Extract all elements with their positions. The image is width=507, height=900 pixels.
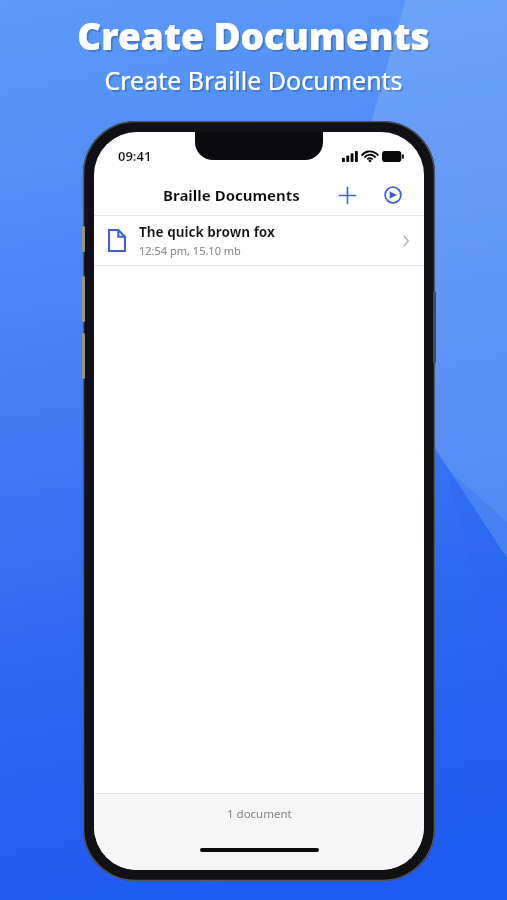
staticText: 1 document [227,806,292,822]
button[interactable]: Settings [376,178,410,212]
staticText: 12:54 pm, 15.10 mb [139,243,241,258]
staticText: Braille Documents [163,185,300,205]
staticText: Create Braille Documents [106,65,405,99]
staticText: The quick brown fox [139,223,275,241]
staticText: 09:41 [118,147,152,165]
staticText: Create Documents [77,10,430,60]
staticText: Create Documents [79,12,432,62]
staticText: Create Braille Documents [104,63,403,97]
button[interactable]: Add document [330,178,364,212]
button[interactable]: The quick brown fox [94,216,424,265]
